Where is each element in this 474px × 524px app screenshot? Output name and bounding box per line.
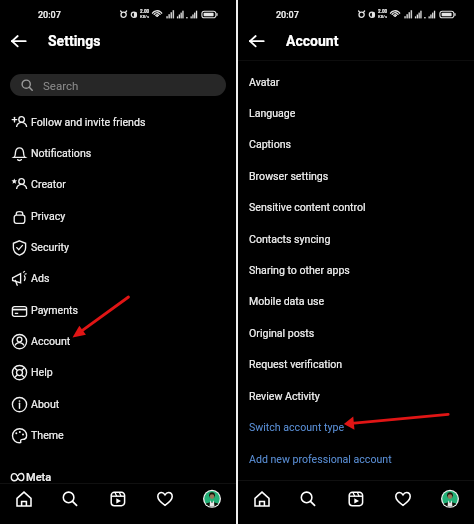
staticText: Request verification: [249, 358, 343, 370]
button[interactable]: Original posts: [238, 319, 474, 347]
staticText: Switch account type: [249, 421, 345, 433]
staticText: 2.00: [140, 9, 150, 14]
button[interactable]: Sharing to other apps: [238, 256, 474, 284]
staticText: Theme: [31, 429, 64, 441]
button[interactable]: Language: [238, 99, 474, 127]
button[interactable]: Likes: [390, 486, 416, 512]
staticText: Follow and invite friends: [31, 116, 146, 128]
button[interactable]: Request verification: [238, 350, 474, 378]
button[interactable]: Likes: [152, 486, 178, 512]
staticText: 2.00: [378, 9, 388, 14]
button[interactable]: Sensitive content control: [238, 193, 474, 221]
staticText: Captions: [249, 138, 292, 150]
staticText: Payments: [31, 304, 79, 316]
staticText: Language: [249, 107, 296, 119]
button[interactable]: Search: [57, 486, 83, 512]
button[interactable]: Add new professional account: [238, 445, 474, 473]
button[interactable]: Back: [243, 28, 269, 54]
staticText: Help: [31, 366, 53, 378]
button[interactable]: Account: [0, 327, 236, 355]
staticText: Mobile data use: [249, 295, 325, 307]
button[interactable]: Captions: [238, 130, 474, 158]
button[interactable]: Ads: [0, 264, 236, 292]
staticText: Sharing to other apps: [249, 264, 350, 276]
button[interactable]: Reels: [105, 486, 131, 512]
staticText: Ads: [31, 272, 50, 284]
button[interactable]: Mobile data use: [238, 287, 474, 315]
button[interactable]: Search: [295, 486, 321, 512]
button[interactable]: Back: [5, 28, 31, 54]
button[interactable]: Home: [11, 486, 37, 512]
staticText: 20:07: [276, 10, 299, 21]
button[interactable]: Help: [0, 358, 236, 386]
staticText: Creator: [31, 178, 66, 190]
staticText: Privacy: [31, 210, 66, 222]
button[interactable]: Privacy: [0, 202, 236, 230]
staticText: Sensitive content control: [249, 201, 366, 213]
staticText: Contacts syncing: [249, 233, 331, 245]
staticText: Review Activity: [249, 390, 320, 402]
staticText: Search: [43, 79, 79, 92]
staticText: Original posts: [249, 327, 315, 339]
staticText: Security: [31, 241, 69, 253]
button[interactable]: Follow and invite friends: [0, 108, 236, 136]
button[interactable]: Profile: [437, 486, 463, 512]
button[interactable]: Avatar: [238, 68, 474, 96]
button[interactable]: Creator: [0, 170, 236, 198]
button[interactable]: Review Activity: [238, 382, 474, 410]
button[interactable]: Security: [0, 233, 236, 261]
button[interactable]: Payments: [0, 296, 236, 324]
staticText: Notifications: [31, 147, 92, 159]
staticText: 20:07: [38, 10, 61, 21]
button[interactable]: Reels: [343, 486, 369, 512]
staticText: Account: [286, 33, 339, 49]
staticText: Avatar: [249, 76, 280, 88]
button[interactable]: About: [0, 390, 236, 418]
button[interactable]: Search: [10, 74, 226, 96]
staticText: Account: [31, 335, 71, 347]
staticText: Add new professional account: [249, 453, 392, 465]
button[interactable]: Browser settings: [238, 162, 474, 190]
button[interactable]: Profile: [199, 486, 225, 512]
button[interactable]: Theme: [0, 421, 236, 449]
staticText: Settings: [48, 33, 101, 49]
staticText: Browser settings: [249, 170, 329, 182]
button[interactable]: Notifications: [0, 139, 236, 167]
staticText: About: [31, 398, 60, 410]
staticText: KB/s: [140, 14, 150, 19]
staticText: KB/s: [378, 14, 388, 19]
button[interactable]: Home: [249, 486, 275, 512]
button[interactable]: Switch account type: [238, 413, 474, 441]
staticText: Meta: [26, 471, 52, 484]
button[interactable]: Contacts syncing: [238, 225, 474, 253]
